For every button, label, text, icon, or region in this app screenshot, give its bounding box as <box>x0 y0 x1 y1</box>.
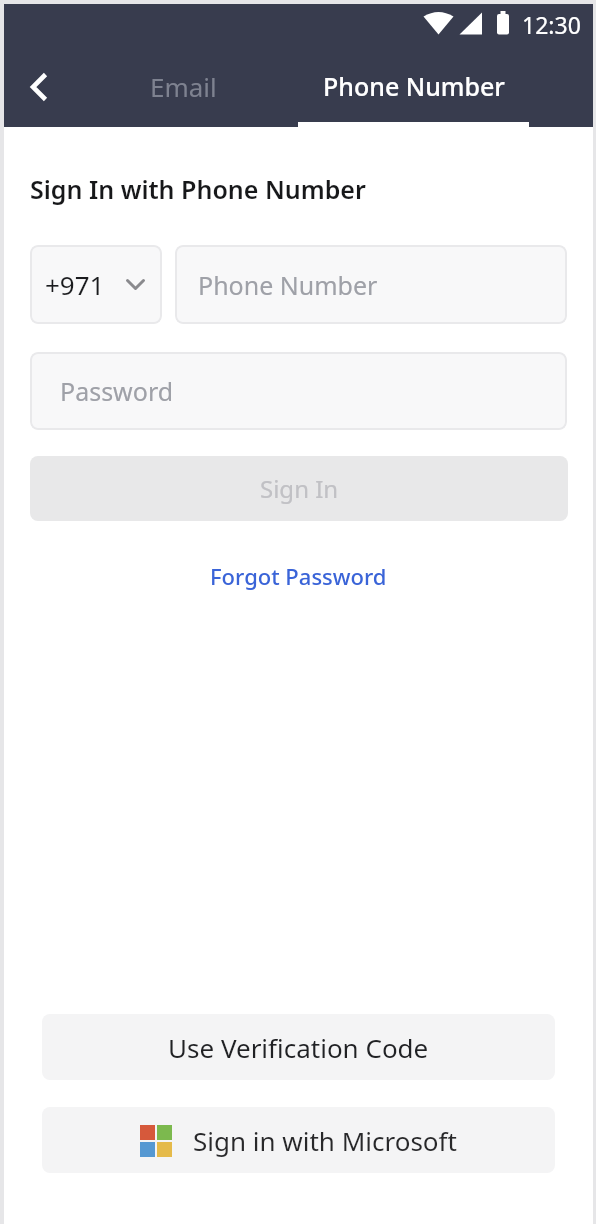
staticText: Sign In with Phone Number <box>30 172 366 206</box>
staticText: Sign in with Microsoft <box>193 1123 457 1158</box>
button[interactable]: Sign in with Microsoft <box>42 1107 555 1173</box>
staticText: Password <box>60 374 174 408</box>
staticText: Phone Number <box>323 69 505 103</box>
button[interactable]: Use Verification Code <box>42 1014 555 1080</box>
staticText: Use Verification Code <box>168 1030 429 1065</box>
staticText: 12:30 <box>522 9 581 40</box>
button[interactable]: Sign In <box>30 456 568 521</box>
button[interactable]: Email <box>68 45 298 127</box>
button[interactable]: Forgot Password <box>210 561 387 591</box>
button[interactable]: Password <box>30 352 567 430</box>
button[interactable]: Phone Number <box>175 245 567 324</box>
button[interactable] <box>12 51 68 123</box>
staticText: +971 <box>45 267 105 302</box>
button[interactable]: Phone Number <box>298 45 529 127</box>
staticText: Sign In <box>260 472 339 505</box>
staticText: Email <box>150 69 217 104</box>
button[interactable]: +971 <box>30 245 162 324</box>
staticText: Phone Number <box>198 268 378 302</box>
staticText: Forgot Password <box>210 561 387 591</box>
